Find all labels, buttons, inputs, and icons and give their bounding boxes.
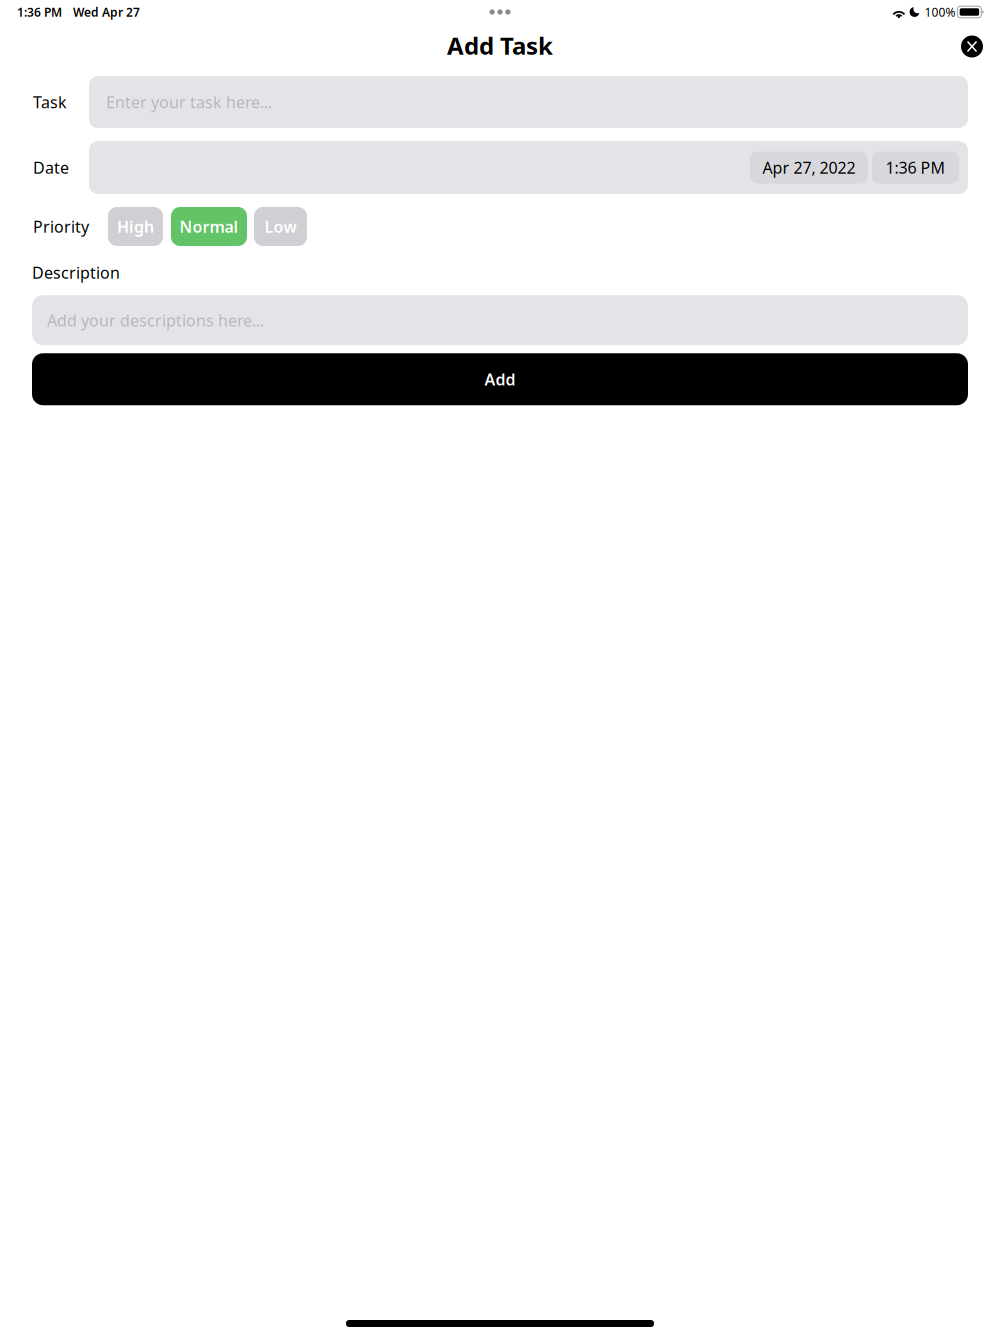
- staticText: 100%: [924, 4, 955, 20]
- staticText: 1:36 PM: [885, 157, 945, 178]
- staticText: Add: [484, 369, 515, 390]
- button[interactable]: Enter your task here...: [89, 76, 1000, 128]
- button[interactable]: 1:36 PM: [872, 151, 959, 183]
- button[interactable]: Add: [0, 353, 1000, 405]
- staticText: Description: [32, 262, 120, 283]
- staticText: Add Task: [447, 30, 553, 61]
- button[interactable]: Add your descriptions here...: [0, 295, 1000, 345]
- button[interactable]: Low: [254, 207, 307, 246]
- staticText: Date: [33, 157, 69, 178]
- staticText: Priority: [33, 216, 89, 237]
- button[interactable]: Normal: [171, 207, 247, 246]
- button[interactable]: Close: [952, 26, 992, 66]
- staticText: Normal: [179, 216, 238, 237]
- staticText: Wed Apr 27: [73, 4, 140, 20]
- button[interactable]: Apr 27, 2022: [750, 151, 868, 183]
- staticText: Add your descriptions here...: [47, 310, 264, 331]
- button[interactable]: High: [108, 207, 163, 246]
- staticText: Apr 27, 2022: [762, 157, 855, 178]
- staticText: Low: [264, 216, 296, 237]
- staticText: Task: [33, 91, 67, 113]
- staticText: 1:36 PM: [17, 4, 62, 20]
- staticText: Enter your task here...: [106, 91, 272, 113]
- staticText: High: [117, 216, 154, 237]
